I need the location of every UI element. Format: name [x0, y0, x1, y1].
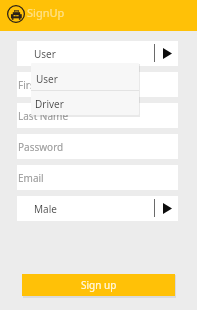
button[interactable]: Select Male: [17, 196, 178, 221]
staticText: Email: [18, 171, 44, 185]
staticText: Driver: [35, 97, 64, 111]
button[interactable]: First Name: [17, 72, 178, 97]
button[interactable]: Last Name: [17, 103, 178, 128]
button[interactable]: User: [31, 63, 139, 90]
button[interactable]: Select User: [17, 41, 178, 66]
button[interactable]: App logo: [7, 5, 25, 23]
staticText: First Name: [18, 78, 70, 92]
staticText: User: [34, 47, 56, 61]
staticText: User: [36, 72, 58, 86]
button[interactable]: Password: [17, 134, 178, 159]
staticText: Male: [34, 202, 57, 216]
staticText: Sign up: [81, 278, 117, 292]
button[interactable]: Driver: [31, 91, 139, 115]
button[interactable]: Email: [17, 165, 178, 190]
staticText: Last Name: [18, 109, 69, 123]
staticText: SignUp: [27, 5, 65, 20]
button[interactable]: Sign up: [22, 274, 175, 296]
staticText: Password: [18, 140, 64, 154]
